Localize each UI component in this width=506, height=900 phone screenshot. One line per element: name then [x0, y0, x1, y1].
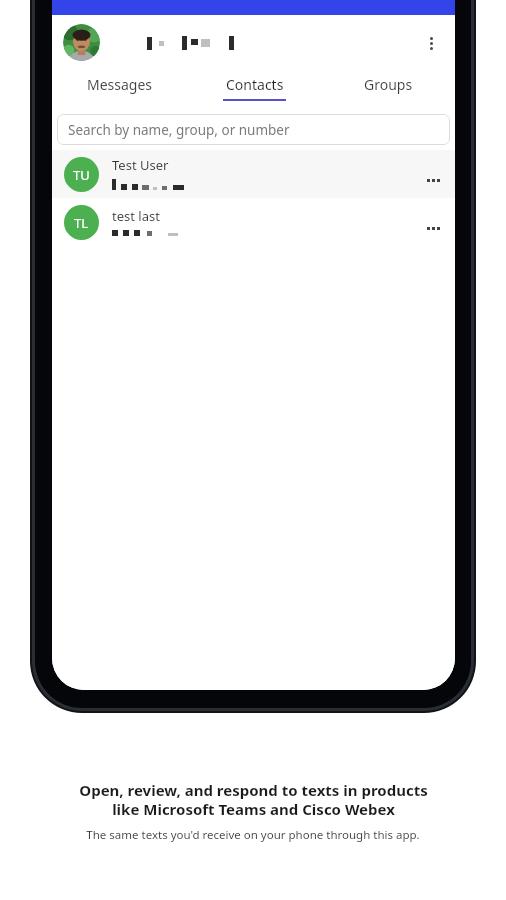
- button[interactable]: TL: [52, 198, 455, 246]
- staticText: TL: [74, 214, 89, 232]
- staticText: Test User: [112, 156, 169, 174]
- staticText: Groups: [364, 75, 413, 94]
- button[interactable]: Contacts: [187, 70, 321, 105]
- staticText: Open, review, and respond to texts in pr…: [79, 780, 428, 819]
- staticText: test last: [112, 207, 160, 225]
- button[interactable]: Messages: [52, 70, 187, 105]
- button[interactable]: Profile: [63, 24, 100, 61]
- button[interactable]: Groups: [321, 70, 455, 105]
- button[interactable]: Contact options: [416, 163, 450, 197]
- staticText: Contacts: [226, 75, 284, 94]
- button[interactable]: Contact options: [416, 211, 450, 245]
- staticText: The same texts you'd receive on your pho…: [86, 827, 420, 843]
- staticText: Messages: [87, 75, 153, 94]
- staticText: TU: [73, 166, 90, 184]
- button[interactable]: Search by name, group, or number: [57, 114, 450, 145]
- button[interactable]: More options: [413, 25, 449, 61]
- button[interactable]: TU: [52, 150, 455, 198]
- staticText: Search by name, group, or number: [68, 121, 290, 139]
